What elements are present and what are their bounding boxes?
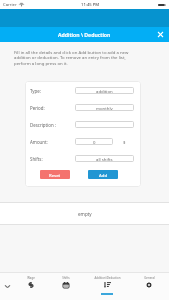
staticText: Type: [30,88,41,94]
staticText: Shifts [62,276,70,280]
staticText: all shifts [96,156,113,162]
staticText: empty [78,211,92,217]
staticText: Period: [30,105,45,111]
staticText: 0 [93,139,96,145]
staticText: Carrier [3,2,17,8]
staticText: Description : [30,122,56,128]
button[interactable]: Collapse [0,272,14,300]
staticText: Shifts: [30,156,43,162]
button[interactable]: Shifts [47,272,85,300]
staticText: addition [96,88,113,94]
staticText: monthly [96,105,113,111]
button[interactable]: Addition\Deduction [85,272,129,300]
button[interactable]: monthly [75,104,134,111]
button[interactable]: Reset [40,170,70,179]
staticText: General [144,276,155,280]
staticText: Reset [49,172,61,178]
staticText: Addition\Deduction [94,276,121,280]
button[interactable]: Add [88,170,118,179]
button[interactable]: all shifts [75,155,134,162]
staticText: Add [99,172,108,178]
staticText: Addition \ Deduction [58,31,111,38]
staticText: Amount: [30,139,48,145]
button[interactable]: General [129,272,169,300]
button[interactable]: Close [155,29,166,40]
staticText: Wage [27,276,35,280]
staticText: $ [123,139,126,145]
staticText: Fill in all the details and click on Add… [14,49,136,67]
button[interactable]: addition [75,87,134,94]
staticText: 11:45 PM [81,2,100,8]
button[interactable]: 0 [75,138,113,145]
button[interactable] [75,121,134,128]
button[interactable]: Wage [14,272,47,300]
